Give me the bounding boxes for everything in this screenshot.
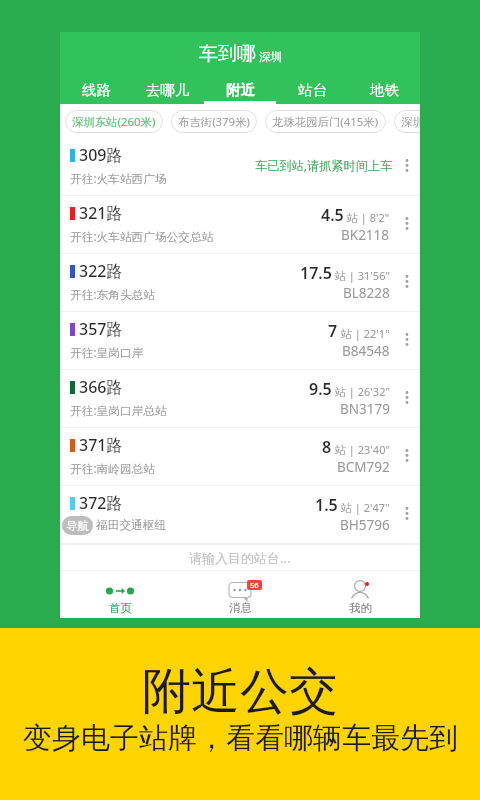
button[interactable]: 导航: [62, 516, 93, 535]
button[interactable]: 321路: [60, 196, 420, 254]
staticText: 321路: [79, 202, 123, 224]
button[interactable]: More options: [400, 146, 414, 182]
button[interactable]: More options: [400, 262, 414, 298]
staticText: 深圳北站(830米): [401, 114, 420, 130]
staticText: 8: [322, 436, 332, 458]
staticText: 开往:皇岗口岸: [70, 344, 144, 360]
staticText: 开往:火车站西广场: [70, 170, 167, 186]
staticText: 线路: [82, 81, 111, 99]
staticText: 站 | 31'56": [335, 268, 390, 283]
staticText: 309路: [79, 144, 123, 166]
staticText: 开往:皇岗口岸总站: [70, 402, 167, 418]
staticText: 布吉街(379米): [178, 114, 250, 130]
staticText: 深圳东站(260米): [72, 114, 156, 130]
button[interactable]: 首页: [60, 571, 180, 618]
staticText: 357路: [79, 318, 123, 340]
staticText: 附近: [226, 81, 255, 99]
staticText: BL8228: [343, 284, 390, 302]
staticText: 龙珠花园后门(415米): [272, 114, 379, 130]
staticText: 7: [328, 320, 338, 342]
button[interactable]: 地铁: [348, 71, 420, 104]
button[interactable]: 深圳东站(260米): [65, 110, 163, 133]
button[interactable]: 龙珠花园后门(415米): [265, 110, 386, 133]
staticText: 开往:东角头总站: [70, 286, 155, 302]
staticText: 消息: [229, 601, 252, 615]
staticText: 站 | 23'40": [335, 442, 390, 457]
button[interactable]: 371路: [60, 428, 420, 486]
button[interactable]: 322路: [60, 254, 420, 312]
staticText: 导航: [66, 519, 89, 533]
button[interactable]: 309路: [60, 138, 420, 196]
staticText: 4.5: [321, 204, 344, 226]
button[interactable]: 消息: [180, 571, 300, 618]
staticText: BN3179: [340, 400, 390, 418]
button[interactable]: 布吉街(379米): [171, 110, 257, 133]
staticText: 站 | 22'1": [341, 326, 390, 341]
staticText: 我的: [349, 601, 372, 615]
staticText: 站 | 8'2": [347, 210, 390, 225]
button[interactable]: 站台: [276, 71, 348, 104]
staticText: 车已到站,请抓紧时间上车: [255, 157, 393, 174]
staticText: B84548: [342, 342, 390, 360]
staticText: 福田交通枢纽: [96, 518, 167, 533]
staticText: 9.5: [309, 378, 332, 400]
button[interactable]: 附近: [204, 71, 276, 104]
staticText: BCM792: [337, 458, 390, 476]
button[interactable]: More options: [400, 378, 414, 414]
button[interactable]: 深圳北站(830米): [394, 110, 420, 133]
staticText: 56: [250, 580, 259, 590]
button[interactable]: 366路: [60, 370, 420, 428]
staticText: 372路: [79, 492, 123, 514]
button[interactable]: More options: [400, 204, 414, 240]
button[interactable]: 我的: [300, 571, 420, 618]
staticText: 站 | 26'32": [335, 384, 390, 399]
staticText: 请输入目的站台...: [189, 549, 291, 567]
staticText: BK2118: [341, 226, 390, 244]
staticText: 开往:火车站西广场公交总站: [70, 228, 214, 244]
button[interactable]: More options: [400, 494, 414, 530]
staticText: 站台: [298, 81, 327, 99]
button[interactable]: 357路: [60, 312, 420, 370]
staticText: 站 | 2'47": [341, 500, 390, 515]
staticText: 地铁: [370, 81, 399, 99]
button[interactable]: More options: [400, 320, 414, 356]
staticText: 366路: [79, 376, 123, 398]
staticText: 去哪儿: [146, 81, 190, 99]
button[interactable]: 请输入目的站台...: [60, 545, 420, 570]
staticText: 17.5: [300, 262, 332, 284]
staticText: 车到哪: [199, 42, 256, 66]
button[interactable]: 372路: [60, 486, 420, 544]
button[interactable]: 线路: [60, 71, 132, 104]
staticText: 开往:南岭园总站: [70, 460, 155, 476]
staticText: 变身电子站牌，看看哪辆车最先到: [23, 720, 458, 757]
staticText: 深圳: [259, 50, 282, 64]
staticText: 首页: [109, 601, 132, 615]
button[interactable]: More options: [400, 436, 414, 472]
staticText: 322路: [79, 260, 123, 282]
staticText: 1.5: [315, 494, 338, 516]
staticText: 371路: [79, 434, 123, 456]
staticText: 附近公交: [142, 661, 338, 723]
button[interactable]: 去哪儿: [132, 71, 204, 104]
staticText: BH5796: [340, 516, 390, 534]
